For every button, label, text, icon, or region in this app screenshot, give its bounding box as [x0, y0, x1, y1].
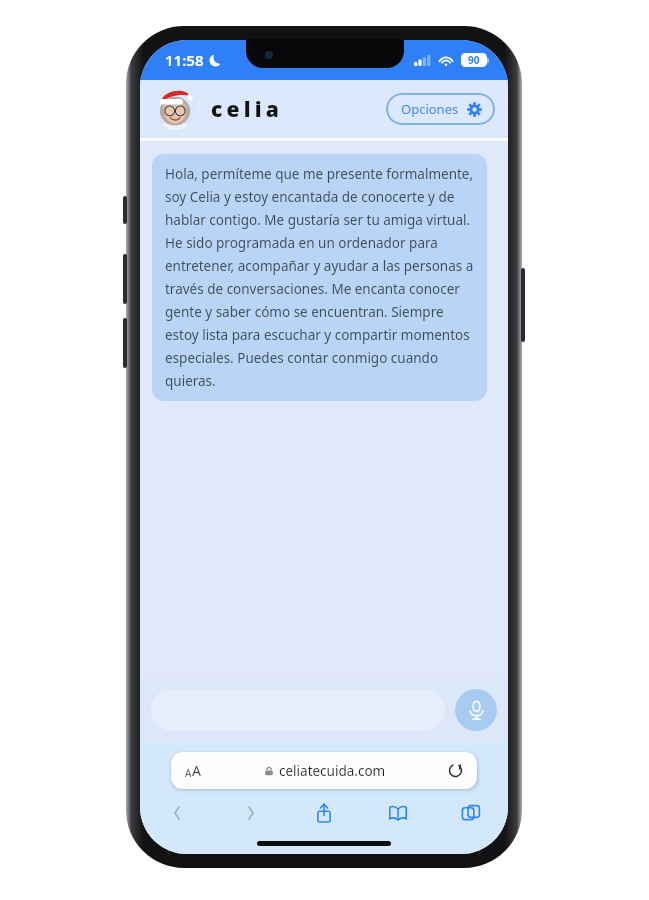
button[interactable]: Hola, permíteme que me presente formalme…	[152, 154, 487, 401]
staticText: Opciones	[401, 100, 459, 118]
button[interactable]: Adelante	[226, 796, 276, 830]
staticText: Hola, permíteme que me presente formalme…	[165, 165, 474, 390]
button[interactable]: Marcadores	[373, 796, 423, 830]
button[interactable]: A	[171, 752, 477, 789]
staticText: A	[185, 766, 192, 780]
staticText: A	[192, 761, 201, 780]
other: Recargar	[448, 763, 463, 778]
staticText: 11:58	[165, 50, 204, 70]
button[interactable]: Compartir	[299, 796, 349, 830]
button[interactable]: Grabar mensaje de voz	[455, 689, 497, 731]
button[interactable]: Pestañas	[446, 796, 496, 830]
button[interactable]: Opciones	[386, 93, 495, 125]
staticText: celia	[211, 95, 283, 124]
staticText: celiatecuida.com	[279, 762, 386, 780]
button[interactable]: Atrás	[152, 796, 202, 830]
staticText: 90	[468, 53, 480, 67]
